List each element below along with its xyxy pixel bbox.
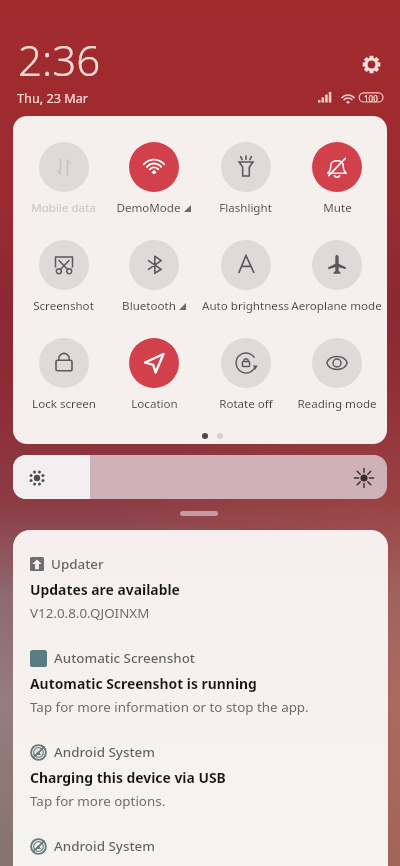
button[interactable]: Aeroplane mode [291, 240, 382, 318]
staticText: Aeroplane mode [291, 298, 382, 314]
button[interactable] [13, 455, 387, 499]
button[interactable]: Android System [13, 716, 388, 810]
button[interactable]: Flashlight [200, 142, 291, 220]
button[interactable]: Mute [291, 142, 382, 220]
staticText: Thu, 23 Mar [17, 89, 89, 106]
staticText: Flashlight [219, 200, 272, 216]
staticText: Updater [51, 555, 104, 573]
button[interactable]: Settings [358, 51, 385, 78]
staticText: Charging this device via USB [30, 768, 226, 787]
staticText: Lock screen [32, 396, 96, 412]
button[interactable]: Updater [13, 530, 388, 622]
button[interactable]: Location [108, 338, 199, 416]
staticText: Android System [54, 743, 155, 761]
staticText: Reading mode [297, 396, 377, 412]
button[interactable]: Lock screen [18, 338, 109, 416]
staticText: Auto brightness [202, 298, 289, 314]
button[interactable]: Android System [13, 810, 388, 866]
button[interactable]: DemoMode [108, 142, 199, 220]
staticText: Bluetooth [122, 298, 176, 314]
staticText: Updates are available [30, 580, 180, 599]
staticText: Android System [54, 837, 155, 855]
button[interactable]: Automatic Screenshot [13, 622, 388, 716]
button[interactable]: Rotate off [200, 338, 291, 416]
staticText: Location [131, 396, 178, 412]
staticText: Tap for more options. [30, 792, 166, 810]
button[interactable]: Mobile data [18, 142, 109, 220]
staticText: Rotate off [219, 396, 273, 412]
button[interactable]: Bluetooth [108, 240, 199, 318]
staticText: 100 [364, 93, 378, 102]
staticText: Mute [323, 200, 352, 216]
staticText: Automatic Screenshot [54, 649, 195, 667]
staticText: 2:36 [18, 31, 101, 88]
button[interactable]: Reading mode [291, 338, 382, 416]
button[interactable]: Screenshot [18, 240, 109, 318]
staticText: DemoMode [116, 200, 181, 216]
staticText: Tap for more information or to stop the … [30, 698, 309, 716]
button[interactable]: Auto brightness [200, 240, 291, 318]
staticText: Automatic Screenshot is running [30, 674, 257, 693]
staticText: Mobile data [31, 200, 96, 216]
staticText: V12.0.8.0.QJOINXM [30, 604, 150, 622]
staticText: Screenshot [33, 298, 94, 314]
